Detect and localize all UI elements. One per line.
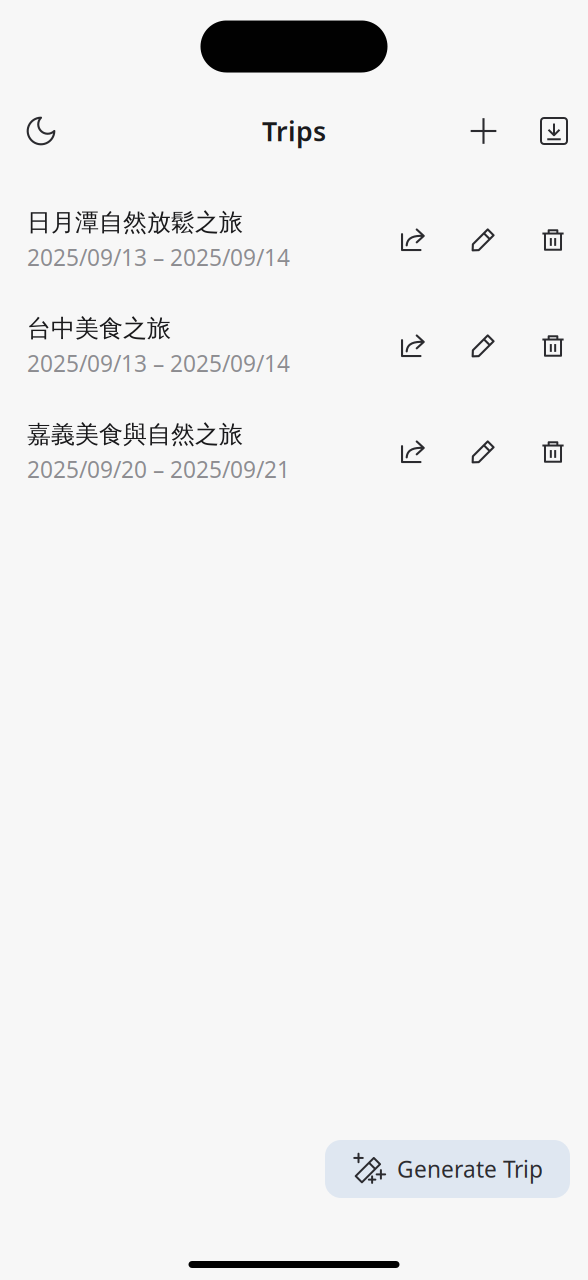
button[interactable]: Toggle appearance [13, 102, 69, 160]
button[interactable]: Edit trip [448, 208, 518, 272]
button[interactable]: Edit trip [448, 314, 518, 378]
button[interactable]: Edit trip [448, 420, 518, 484]
button[interactable]: Delete trip [518, 314, 588, 378]
staticText: 嘉義美食與自然之旅 [27, 420, 243, 449]
button[interactable]: Delete trip [518, 208, 588, 272]
staticText: 2025/09/13 – 2025/09/14 [27, 348, 290, 378]
button[interactable]: Import trip [528, 102, 580, 160]
button[interactable]: Share trip [378, 208, 448, 272]
staticText: 2025/09/13 – 2025/09/14 [27, 242, 290, 272]
staticText: Generate Trip [397, 1154, 543, 1184]
button[interactable]: Share trip [378, 420, 448, 484]
staticText: 日月潭自然放鬆之旅 [27, 208, 243, 237]
button[interactable]: Generate Trip [325, 1140, 570, 1198]
staticText: 台中美食之旅 [27, 314, 171, 343]
button[interactable]: New trip [439, 102, 528, 160]
staticText: Trips [262, 113, 326, 149]
staticText: 2025/09/20 – 2025/09/21 [27, 454, 290, 484]
button[interactable]: Share trip [378, 314, 448, 378]
button[interactable]: Delete trip [518, 420, 588, 484]
